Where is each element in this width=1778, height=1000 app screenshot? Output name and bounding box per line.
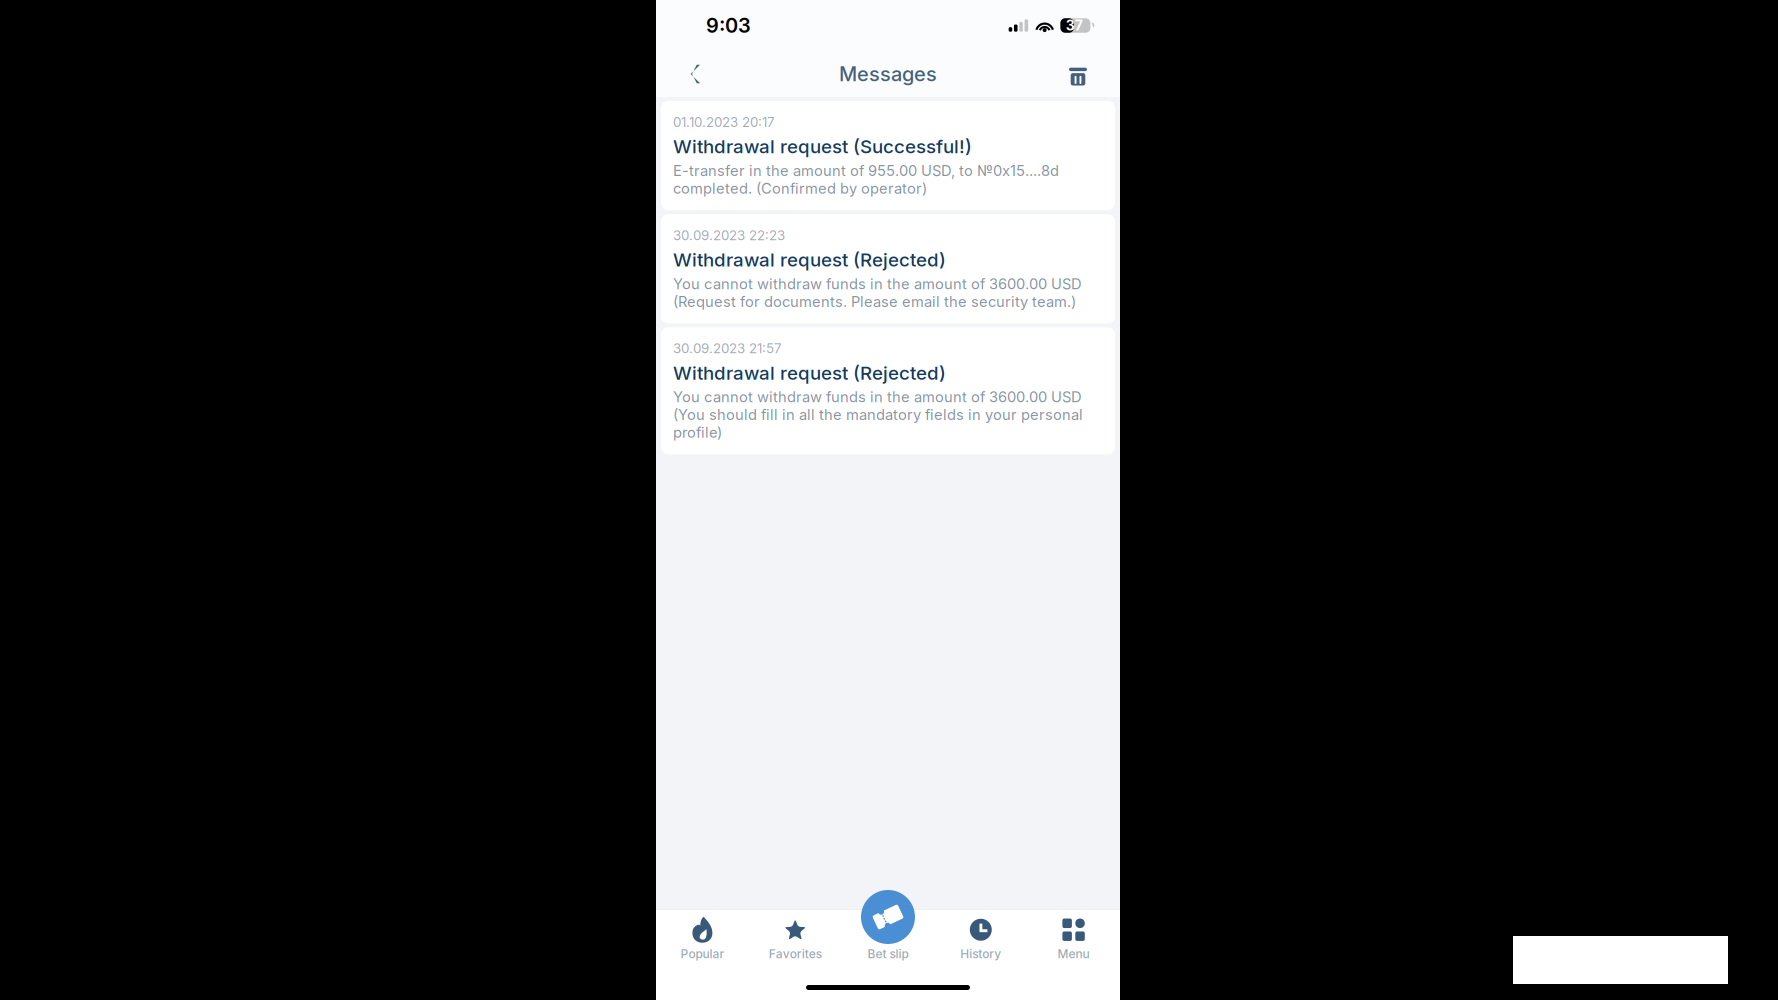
staticText: 9:03: [706, 13, 751, 38]
staticText: History: [960, 947, 1001, 961]
staticText: You cannot withdraw funds in the amount …: [673, 388, 1083, 441]
button[interactable]: Delete all messages: [1055, 51, 1101, 97]
staticText: 01.10.2023 20:17: [673, 114, 775, 130]
staticText: Bet slip: [867, 947, 908, 961]
button[interactable]: Favorites: [749, 907, 842, 967]
button[interactable]: 30.09.2023 21:57: [661, 327, 1115, 454]
staticText: Withdrawal request (Rejected): [673, 362, 946, 384]
button[interactable]: 01.10.2023 20:17: [661, 101, 1115, 210]
button[interactable]: Bet slip: [861, 890, 915, 944]
button[interactable]: Back: [672, 51, 718, 97]
button[interactable]: 30.09.2023 22:23: [661, 214, 1115, 323]
button[interactable]: Bet slip: [842, 907, 934, 967]
staticText: E-transfer in the amount of 955.00 USD, …: [673, 162, 1059, 197]
staticText: 30.09.2023 21:57: [673, 340, 782, 356]
staticText: Menu: [1058, 947, 1090, 961]
staticText: Popular: [680, 947, 724, 961]
staticText: Messages: [839, 62, 937, 86]
staticText: Favorites: [769, 947, 822, 961]
button[interactable]: Popular: [656, 907, 749, 967]
button[interactable]: Menu: [1027, 907, 1120, 967]
staticText: 37: [1066, 17, 1083, 34]
button[interactable]: History: [934, 907, 1027, 967]
staticText: Withdrawal request (Successful!): [673, 135, 972, 158]
staticText: You cannot withdraw funds in the amount …: [673, 275, 1082, 310]
staticText: 30.09.2023 22:23: [673, 227, 785, 243]
staticText: Withdrawal request (Rejected): [673, 248, 946, 271]
